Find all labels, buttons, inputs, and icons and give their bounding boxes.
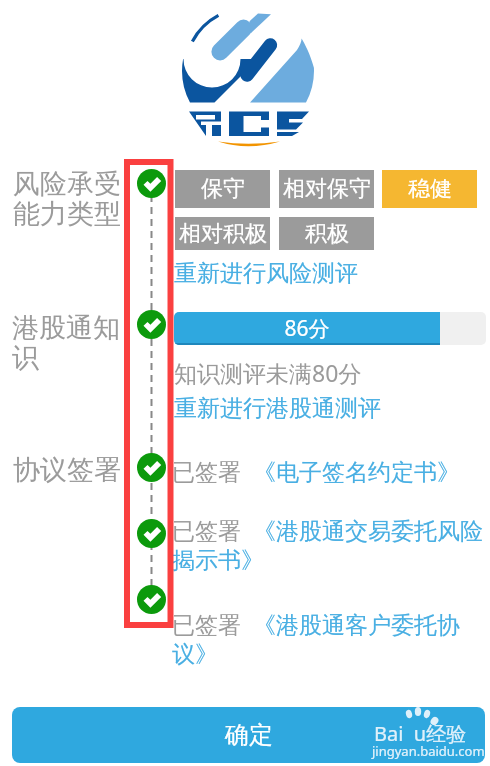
staticText: 稳健 bbox=[408, 175, 452, 203]
staticText: 风险承受 能力类型 bbox=[13, 167, 121, 231]
staticText: 确定 bbox=[225, 720, 273, 750]
button[interactable]: 保守 bbox=[175, 170, 270, 208]
button[interactable]: 已签署 《港股通交易委托风险揭示书》 bbox=[172, 514, 488, 574]
staticText: 积极 bbox=[305, 220, 349, 248]
staticText: 重新进行港股通测评 bbox=[174, 394, 381, 423]
staticText: 已签署 《电子签名约定书》 bbox=[172, 455, 460, 486]
button[interactable]: 重新进行风险测评 bbox=[174, 259, 358, 288]
button[interactable]: 相对积极 bbox=[175, 217, 270, 250]
staticText: Bai u经验 bbox=[374, 720, 467, 747]
button[interactable]: 已签署 《港股通客户委托协议》 bbox=[172, 608, 488, 668]
button[interactable]: 相对保守 bbox=[279, 170, 374, 208]
staticText: 知识测评未满80分 bbox=[174, 357, 362, 388]
button[interactable]: 稳健 bbox=[382, 170, 477, 208]
staticText: 已签署 《港股通客户委托协议》 bbox=[172, 608, 488, 668]
staticText: 重新进行风险测评 bbox=[174, 259, 358, 288]
button[interactable]: 重新进行港股通测评 bbox=[174, 394, 381, 423]
button[interactable]: 积极 bbox=[279, 217, 374, 250]
staticText: 已签署 《港股通交易委托风险揭示书》 bbox=[172, 514, 488, 574]
button[interactable]: 已签署 《电子签名约定书》 bbox=[172, 455, 488, 486]
button[interactable]: 确定 bbox=[12, 707, 485, 763]
staticText: 港股通知 识 bbox=[12, 311, 120, 375]
staticText: 保守 bbox=[201, 175, 245, 203]
staticText: jingyan.baidu.com bbox=[372, 742, 485, 760]
staticText: 相对积极 bbox=[179, 220, 267, 248]
staticText: 协议签署 bbox=[13, 453, 121, 487]
staticText: 86分 bbox=[174, 314, 440, 343]
button[interactable]: 86分 bbox=[174, 312, 486, 345]
staticText: 相对保守 bbox=[283, 175, 371, 203]
